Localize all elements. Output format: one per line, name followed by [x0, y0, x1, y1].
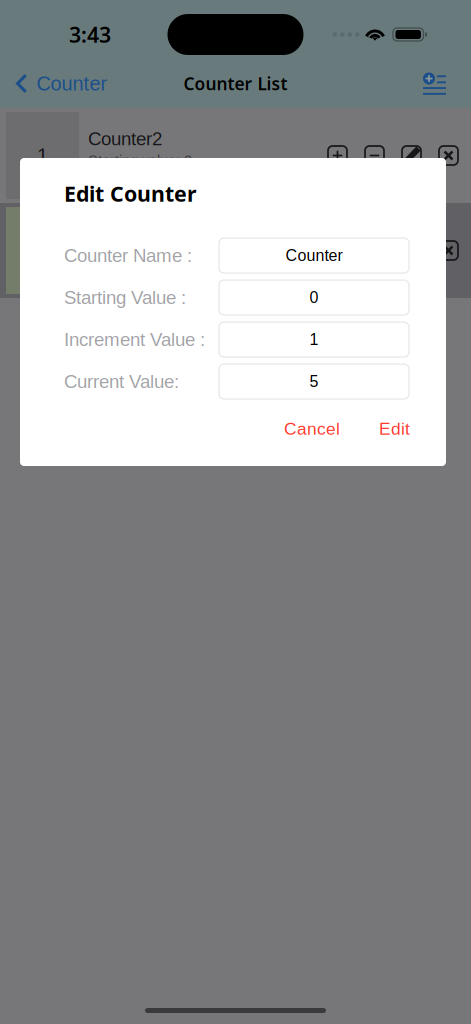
staticText: Edit Counter [64, 179, 197, 208]
button[interactable]: Cancel [275, 411, 349, 446]
staticText: Current Value: [64, 371, 179, 392]
staticText: 1 [37, 144, 48, 167]
staticText: Increment Value : [64, 329, 205, 350]
button[interactable]: Counter [0, 63, 115, 104]
staticText: Cancel [284, 419, 340, 438]
staticText: Counter [36, 72, 107, 95]
staticText: Counter [285, 247, 342, 264]
staticText: Starting value: 0 [88, 247, 192, 264]
staticText: 0 [309, 289, 318, 306]
button[interactable]: Edit [370, 411, 419, 446]
staticText: Starting value: 0 [88, 152, 192, 169]
staticText: Counter2 [88, 128, 162, 149]
staticText: 3:43 [69, 20, 111, 49]
staticText: Counter List [183, 72, 287, 95]
staticText: Counter Name : [64, 245, 192, 266]
button[interactable]: Add counter [411, 66, 471, 100]
staticText: Starting Value : [64, 287, 186, 308]
staticText: 5 [309, 373, 318, 390]
staticText: 1 [309, 331, 318, 348]
staticText: Edit [379, 419, 410, 438]
